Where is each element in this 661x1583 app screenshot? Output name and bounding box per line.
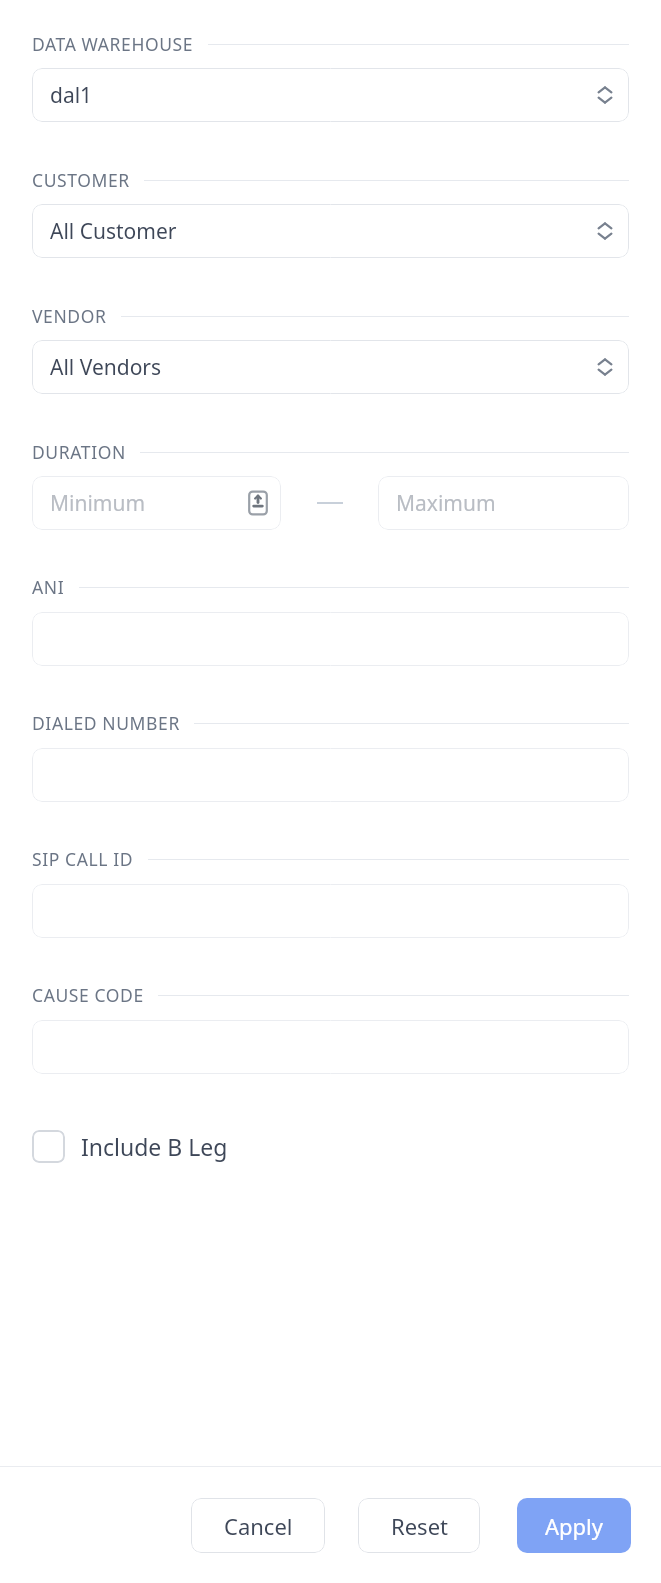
staticText: dal1 [50, 81, 595, 110]
button[interactable]: All Vendors [32, 340, 629, 394]
staticText: DURATION [32, 440, 126, 464]
button[interactable]: Apply [517, 1498, 631, 1553]
button[interactable]: Minimum [32, 476, 281, 530]
staticText: CUSTOMER [32, 168, 130, 192]
button[interactable] [32, 748, 629, 802]
staticText: Maximum [396, 489, 496, 518]
staticText: CAUSE CODE [32, 983, 144, 1007]
staticText: DATA WAREHOUSE [32, 32, 194, 56]
button[interactable]: Include B Leg [32, 1122, 228, 1170]
staticText: All Vendors [50, 353, 595, 382]
button[interactable] [32, 612, 629, 666]
button[interactable]: All Customer [32, 204, 629, 258]
button[interactable]: Maximum [378, 476, 629, 530]
staticText: SIP CALL ID [32, 847, 134, 871]
staticText: Apply [545, 1511, 604, 1541]
button[interactable] [32, 1020, 629, 1074]
staticText: Cancel [224, 1511, 293, 1541]
button[interactable]: Cancel [191, 1498, 325, 1553]
staticText: VENDOR [32, 304, 107, 328]
staticText: Reset [391, 1511, 448, 1541]
staticText: DIALED NUMBER [32, 711, 180, 735]
staticText: ANI [32, 575, 65, 599]
staticText: All Customer [50, 217, 595, 246]
staticText: Include B Leg [81, 1131, 228, 1162]
staticText: Minimum [50, 489, 247, 518]
button[interactable]: dal1 [32, 68, 629, 122]
button[interactable] [32, 884, 629, 938]
button[interactable]: Reset [358, 1498, 480, 1553]
